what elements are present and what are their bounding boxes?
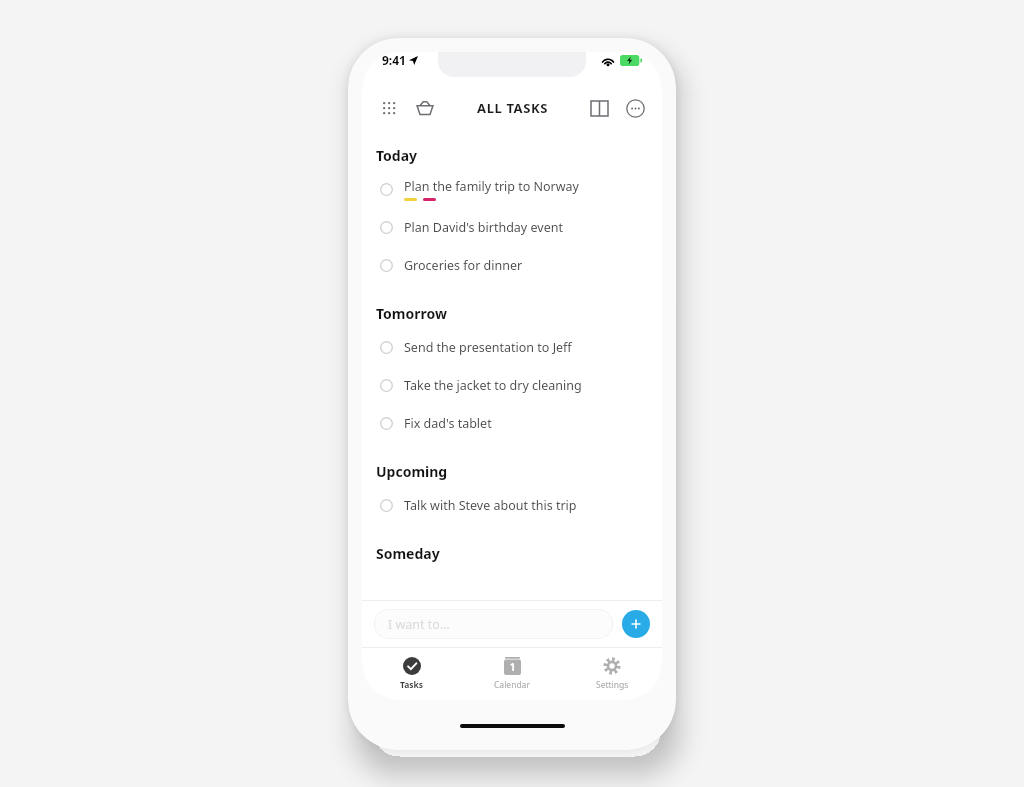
button[interactable]: Two column view xyxy=(586,95,612,121)
button[interactable]: Calendar xyxy=(462,648,562,700)
button[interactable]: Add task xyxy=(622,610,650,638)
staticText: Today xyxy=(376,146,418,165)
button[interactable]: Take the jacket to dry cleaning xyxy=(376,366,648,404)
button[interactable]: Tasks xyxy=(362,648,462,700)
button[interactable]: Send the presentation to Jeff xyxy=(376,328,648,366)
button[interactable]: More options xyxy=(622,95,648,121)
staticText: Plan the family trip to Norway xyxy=(404,178,579,195)
staticText: Upcoming xyxy=(376,462,448,481)
button[interactable]: Inbox xyxy=(412,95,438,121)
staticText: Settings xyxy=(596,679,629,691)
staticText: Take the jacket to dry cleaning xyxy=(404,377,582,394)
staticText: Someday xyxy=(376,544,440,563)
button[interactable]: Plan David's birthday event xyxy=(376,208,648,246)
button[interactable]: Fix dad's tablet xyxy=(376,404,648,442)
button[interactable]: Groceries for dinner xyxy=(376,246,648,284)
staticText: ALL TASKS xyxy=(477,99,548,117)
staticText: Plan David's birthday event xyxy=(404,219,563,236)
staticText: 9:41 xyxy=(382,52,406,68)
staticText: Groceries for dinner xyxy=(404,257,523,274)
staticText: Calendar xyxy=(494,679,530,691)
staticText: Talk with Steve about this trip xyxy=(404,497,577,514)
staticText: I want to... xyxy=(388,616,450,633)
button[interactable]: I want to... xyxy=(374,609,613,639)
button[interactable]: Talk with Steve about this trip xyxy=(376,486,648,524)
staticText: Fix dad's tablet xyxy=(404,415,492,432)
button[interactable]: Apps xyxy=(376,95,402,121)
staticText: Tomorrow xyxy=(376,304,447,323)
button[interactable]: Settings xyxy=(562,648,662,700)
button[interactable]: Plan the family trip to Norway xyxy=(376,170,648,208)
staticText: Tasks xyxy=(400,679,424,691)
staticText: Send the presentation to Jeff xyxy=(404,339,572,356)
